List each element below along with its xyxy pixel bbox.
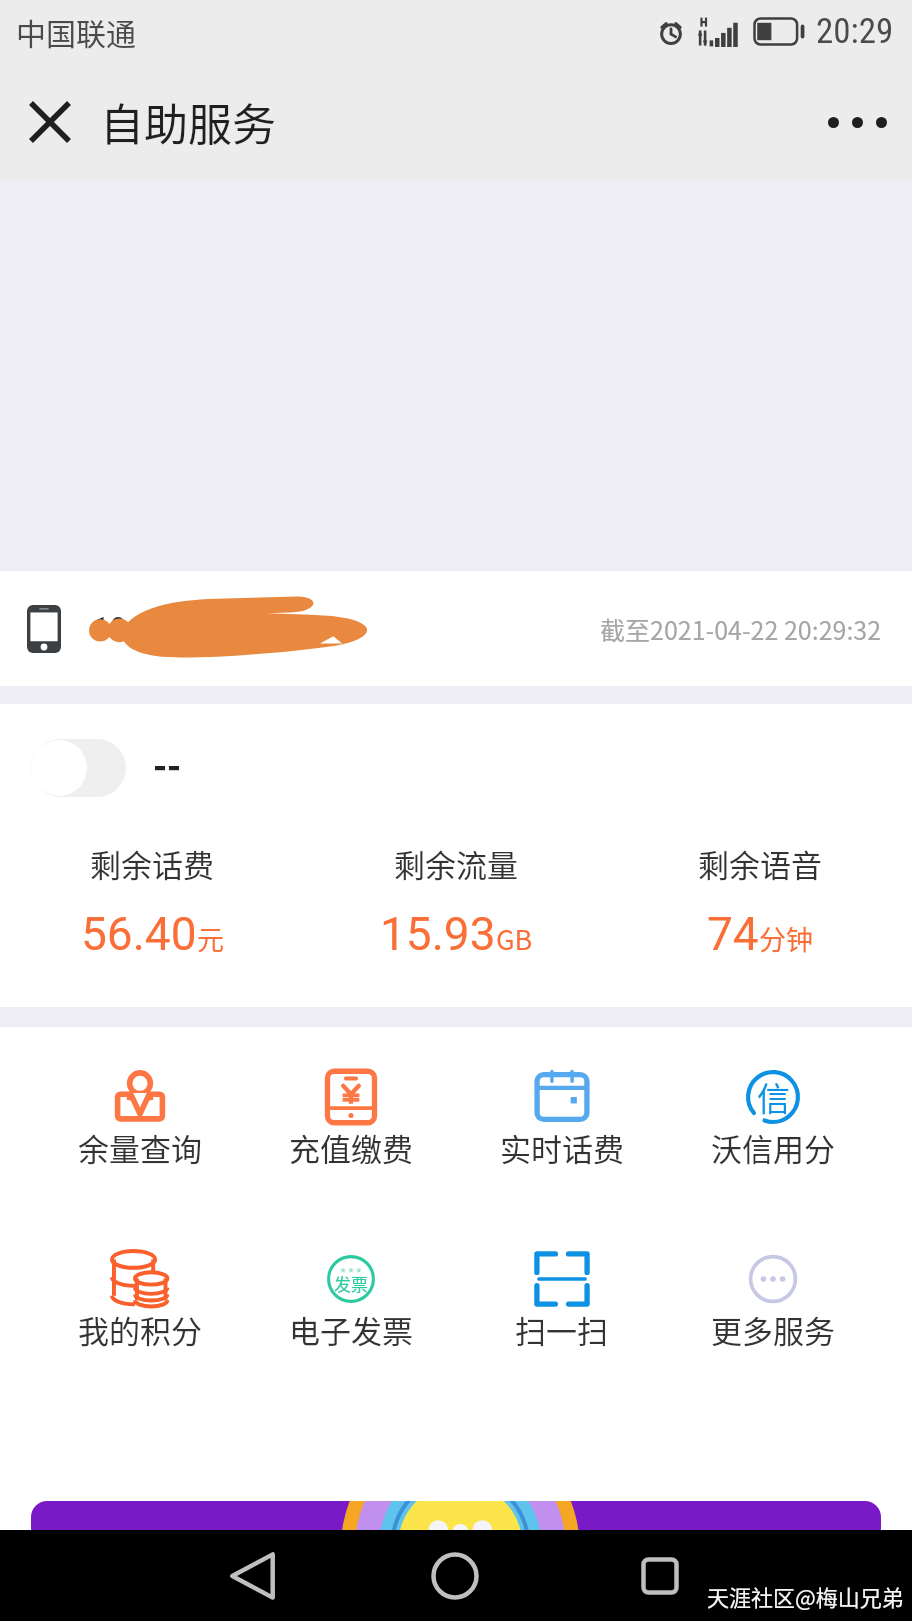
staticText: 分钟 <box>759 919 813 958</box>
staticText: 剩余流量 <box>394 841 518 886</box>
staticText: 20:29 <box>816 11 894 52</box>
button[interactable]: Back <box>202 1530 302 1621</box>
button[interactable]: Promotion banner <box>31 1501 881 1530</box>
staticText: 剩余语音 <box>698 841 822 886</box>
button[interactable]: 充值缴费 <box>245 1069 456 1170</box>
staticText: 元 <box>197 919 224 958</box>
staticText: GB <box>496 919 533 958</box>
staticText: 74 <box>707 907 759 961</box>
button[interactable]: 余量查询 <box>34 1069 245 1170</box>
button[interactable]: 更多服务 <box>667 1251 878 1352</box>
button[interactable]: More options <box>802 67 912 177</box>
staticText: 发票 <box>334 1271 368 1296</box>
staticText: 沃信用分 <box>711 1125 835 1170</box>
staticText: 天涯社区@梅山兄弟 <box>707 1580 904 1612</box>
staticText: 18 <box>93 609 127 649</box>
staticText: 剩余话费 <box>90 841 214 886</box>
staticText: 我的积分 <box>78 1307 202 1352</box>
button[interactable]: 我的积分 <box>34 1251 245 1352</box>
button[interactable]: 实时话费 <box>456 1069 667 1170</box>
staticText: 信 <box>757 1073 790 1121</box>
staticText: 自助服务 <box>100 90 276 154</box>
staticText: 扫一扫 <box>515 1307 608 1352</box>
staticText: 中国联通 <box>16 10 136 53</box>
staticText: 56.40 <box>81 907 197 961</box>
button[interactable]: 剩余语音 <box>608 841 912 961</box>
staticText: 余量查询 <box>78 1125 202 1170</box>
staticText: 更多服务 <box>711 1307 835 1352</box>
button[interactable]: Toggle <box>31 739 126 797</box>
button[interactable]: Home <box>405 1530 505 1621</box>
staticText: 充值缴费 <box>289 1125 413 1170</box>
button[interactable]: 剩余话费 <box>0 841 304 961</box>
button[interactable]: 信 <box>667 1069 878 1170</box>
button[interactable]: 扫一扫 <box>456 1251 667 1352</box>
staticText: 15.93 <box>380 907 496 961</box>
button[interactable]: Recents <box>610 1530 710 1621</box>
staticText: 截至2021-04-22 20:29:32 <box>600 611 882 647</box>
button[interactable]: Close <box>0 67 100 177</box>
staticText: 电子发票 <box>289 1307 413 1352</box>
button[interactable]: 发票 <box>245 1251 456 1352</box>
button[interactable]: 剩余流量 <box>304 841 608 961</box>
staticText: 实时话费 <box>500 1125 624 1170</box>
